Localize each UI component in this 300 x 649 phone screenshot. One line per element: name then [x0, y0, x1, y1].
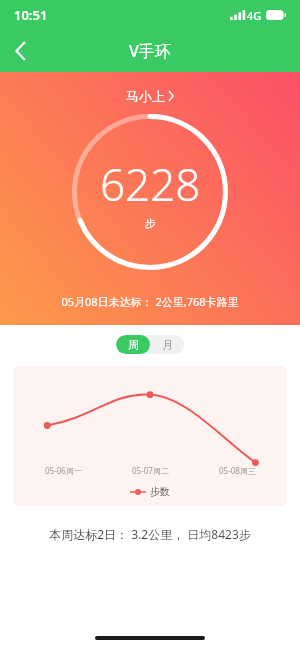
- button[interactable]: Back: [0, 30, 42, 72]
- staticText: 05月08日未达标： 2公里,768卡路里: [61, 294, 239, 309]
- staticText: 周: [128, 338, 139, 352]
- button[interactable]: 马小上: [122, 86, 178, 106]
- staticText: 6228: [100, 154, 201, 214]
- staticText: 本周达标2日： 3.2公里， 日均8423步: [49, 526, 251, 542]
- button[interactable]: 月: [150, 335, 184, 354]
- staticText: 05-06周一: [45, 465, 82, 476]
- staticText: V手环: [129, 40, 171, 62]
- staticText: 月: [162, 338, 173, 352]
- staticText: 05-07周二: [132, 465, 169, 476]
- staticText: 步: [145, 216, 156, 230]
- staticText: 05-08周三: [219, 465, 256, 476]
- staticText: 马小上: [126, 88, 165, 104]
- staticText: 步数: [150, 485, 170, 498]
- staticText: 4G: [247, 8, 262, 23]
- button[interactable]: 周: [116, 335, 150, 354]
- staticText: 10:51: [14, 6, 48, 24]
